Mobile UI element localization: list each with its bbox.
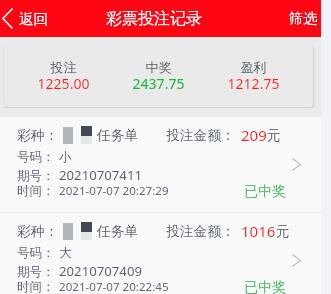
staticText: 任务单 — [97, 223, 139, 240]
staticText: 已中奖 — [244, 183, 286, 201]
staticText: 盈利 — [206, 59, 301, 75]
staticText: 已中奖 — [244, 279, 286, 294]
button[interactable]: 彩种： — [0, 117, 321, 212]
staticText: 期号： — [17, 168, 55, 184]
staticText: 投注金额： — [166, 127, 235, 144]
staticText: 号码： — [17, 245, 55, 261]
staticText: 20210707409 — [59, 262, 142, 280]
staticText: 任务单 — [97, 127, 139, 144]
other: Details — [292, 254, 301, 267]
button[interactable]: 返回 — [0, 0, 56, 37]
staticText: 2021-07-07 20:27:29 — [59, 183, 169, 199]
staticText: 返回 — [19, 10, 48, 28]
staticText: 投注金额： — [166, 223, 235, 240]
staticText: 彩种： — [17, 127, 59, 144]
staticText: 元 — [267, 127, 281, 144]
staticText: 筛选 — [289, 10, 317, 28]
staticText: 中奖 — [111, 59, 206, 75]
staticText: 号码： — [17, 149, 55, 165]
button[interactable]: 彩种： — [0, 213, 321, 294]
staticText: 期号： — [17, 264, 55, 280]
staticText: 时间： — [17, 183, 55, 199]
staticText: 彩票投注记录 — [106, 9, 202, 29]
staticText: 时间： — [17, 279, 55, 294]
staticText: 大 — [59, 245, 72, 261]
staticText: 2021-07-07 20:22:45 — [59, 279, 169, 294]
staticText: 彩种： — [17, 223, 59, 240]
staticText: 1225.00 — [16, 74, 111, 93]
staticText: 2437.75 — [111, 74, 206, 93]
button[interactable]: 筛选 — [281, 0, 321, 37]
staticText: 投注 — [16, 59, 111, 75]
staticText: 1212.75 — [206, 74, 301, 93]
staticText: 20210707411 — [59, 166, 142, 184]
staticText: 209 — [241, 125, 267, 145]
other: Details — [292, 158, 301, 171]
staticText: 1016 — [241, 221, 276, 241]
staticText: 元 — [276, 223, 290, 240]
staticText: 小 — [59, 149, 72, 165]
